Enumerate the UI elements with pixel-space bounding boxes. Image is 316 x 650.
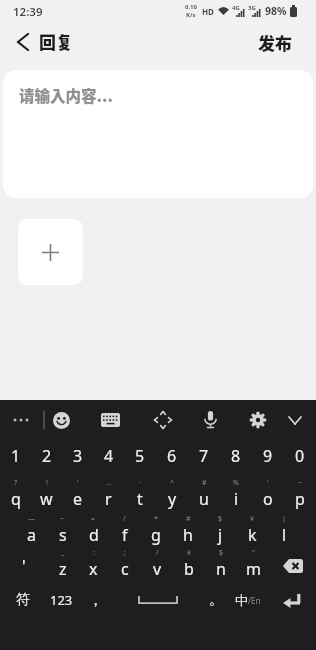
button[interactable]: !: [31, 478, 62, 514]
staticText: k: [248, 524, 257, 546]
staticText: ": [252, 548, 255, 558]
staticText: $: [218, 514, 223, 524]
staticText: l: [282, 524, 287, 546]
button[interactable]: /: [141, 548, 173, 584]
staticText: x: [89, 558, 98, 580]
button[interactable]: :: [78, 548, 109, 584]
staticText: s: [59, 524, 67, 546]
button[interactable]: —: [16, 514, 47, 550]
staticText: i: [234, 488, 239, 510]
button[interactable]: %: [220, 478, 252, 514]
button[interactable]: $: [205, 548, 237, 584]
button[interactable]: 请输入内容...: [3, 70, 313, 198]
button[interactable]: =: [78, 514, 109, 550]
staticText: _: [61, 548, 65, 558]
staticText: p: [295, 488, 305, 510]
button[interactable]: 1: [0, 440, 31, 472]
button[interactable]: [272, 582, 312, 618]
staticText: 3: [73, 445, 83, 467]
staticText: 发布: [258, 30, 292, 55]
button[interactable]: [149, 406, 177, 434]
staticText: /: [156, 548, 159, 558]
button[interactable]: ¥: [236, 514, 268, 550]
staticText: 98%: [265, 4, 287, 18]
button[interactable]: 9: [252, 440, 284, 472]
staticText: q: [11, 488, 21, 510]
staticText: 回复: [39, 29, 73, 54]
staticText: ^: [170, 478, 175, 488]
staticText: |: [282, 514, 286, 524]
button[interactable]: /: [109, 514, 140, 550]
button[interactable]: 发布: [258, 30, 292, 55]
staticText: e: [73, 488, 83, 510]
button[interactable]: [47, 406, 75, 434]
button[interactable]: 0: [284, 440, 316, 472]
button[interactable]: [18, 219, 83, 285]
staticText: 中: [235, 592, 248, 608]
button[interactable]: [269, 548, 316, 584]
button[interactable]: [196, 406, 224, 434]
staticText: h: [183, 524, 193, 546]
staticText: u: [199, 488, 209, 510]
staticText: j: [218, 524, 223, 546]
button[interactable]: …: [93, 478, 124, 514]
staticText: c: [121, 558, 129, 580]
staticText: d: [89, 524, 99, 546]
staticText: 8: [231, 445, 241, 467]
button[interactable]: 7: [188, 440, 220, 472]
button[interactable]: ": [237, 548, 269, 584]
button[interactable]: #: [188, 478, 220, 514]
button[interactable]: [96, 406, 124, 434]
button[interactable]: ¥: [173, 548, 205, 584]
button[interactable]: 。: [202, 582, 230, 618]
button[interactable]: #: [172, 514, 204, 550]
staticText: 1: [11, 445, 21, 467]
button[interactable]: $: [204, 514, 236, 550]
button[interactable]: 5: [124, 440, 156, 472]
button[interactable]: _: [47, 548, 78, 584]
staticText: z: [59, 558, 67, 580]
button[interactable]: ^: [156, 478, 188, 514]
staticText: HD: [202, 6, 214, 17]
button[interactable]: 3: [62, 440, 93, 472]
button[interactable]: 2: [31, 440, 62, 472]
staticText: ~: [298, 478, 303, 488]
button[interactable]: 中: [231, 582, 265, 618]
button[interactable]: *: [140, 514, 172, 550]
staticText: 5: [135, 445, 145, 467]
staticText: 123: [50, 591, 73, 609]
staticText: v: [153, 558, 162, 580]
button[interactable]: 123: [44, 582, 78, 618]
button[interactable]: ;: [109, 548, 141, 584]
button[interactable]: |: [268, 514, 300, 550]
button[interactable]: ·: [124, 478, 156, 514]
staticText: ': [267, 478, 269, 488]
staticText: a: [27, 524, 36, 546]
button[interactable]: [6, 25, 40, 59]
button[interactable]: ': [62, 478, 93, 514]
button[interactable]: ?: [0, 478, 31, 514]
staticText: 0.10: [185, 3, 197, 11]
button[interactable]: [116, 582, 200, 618]
button[interactable]: ~: [47, 514, 78, 550]
staticText: ，: [88, 591, 103, 610]
button[interactable]: ': [0, 548, 47, 584]
button[interactable]: [244, 406, 272, 434]
button[interactable]: ，: [80, 582, 110, 618]
button[interactable]: 符: [4, 582, 42, 618]
button[interactable]: ': [252, 478, 284, 514]
button[interactable]: ~: [284, 478, 316, 514]
staticText: /En: [248, 595, 261, 606]
staticText: o: [263, 488, 273, 510]
button[interactable]: [283, 408, 307, 432]
staticText: ?: [14, 478, 18, 488]
button[interactable]: 4: [93, 440, 124, 472]
staticText: 9: [263, 445, 273, 467]
staticText: $: [219, 548, 224, 558]
button[interactable]: 8: [220, 440, 252, 472]
staticText: 4G: [232, 4, 240, 12]
staticText: *: [154, 514, 158, 524]
button[interactable]: 6: [156, 440, 188, 472]
staticText: #: [202, 478, 207, 488]
staticText: w: [40, 488, 53, 510]
